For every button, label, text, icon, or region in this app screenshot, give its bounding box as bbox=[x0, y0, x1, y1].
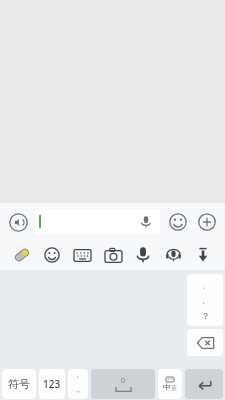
button[interactable]: More bbox=[196, 211, 218, 233]
staticText: ， bbox=[74, 384, 82, 394]
button[interactable]: 123 bbox=[39, 369, 65, 399]
staticText: 英 bbox=[171, 384, 177, 392]
button[interactable]: Backspace bbox=[187, 329, 223, 356]
button[interactable]: ' bbox=[68, 369, 88, 399]
button[interactable]: Microphone bbox=[35, 209, 160, 234]
button[interactable]: Keyboard bbox=[70, 243, 94, 267]
staticText: ？ bbox=[201, 310, 210, 321]
staticText: 符号 bbox=[8, 377, 30, 391]
staticText: 中 bbox=[163, 382, 171, 392]
button[interactable]: Camera bbox=[101, 243, 125, 267]
staticText: ' bbox=[77, 374, 79, 384]
button[interactable]: 0 bbox=[91, 369, 155, 399]
button[interactable]: Voice input bbox=[7, 211, 29, 233]
button[interactable]: Microphone bbox=[138, 214, 154, 230]
button[interactable]: Enter bbox=[185, 369, 223, 399]
button[interactable]: Emoji bbox=[167, 211, 189, 233]
button[interactable]: Eraser bbox=[10, 243, 34, 267]
staticText: 、 bbox=[202, 280, 210, 290]
staticText: 0 bbox=[121, 376, 126, 386]
button[interactable]: 、 bbox=[187, 274, 223, 326]
button[interactable]: 符号 bbox=[2, 369, 36, 399]
staticText: 123 bbox=[43, 377, 61, 391]
button[interactable]: Voice bbox=[131, 243, 155, 267]
staticText: 。 bbox=[202, 295, 210, 305]
button[interactable]: 中 bbox=[158, 369, 182, 399]
button[interactable]: Sticker bbox=[40, 243, 64, 267]
button[interactable]: Voice changer bbox=[161, 243, 185, 267]
button[interactable]: Download bbox=[191, 243, 215, 267]
